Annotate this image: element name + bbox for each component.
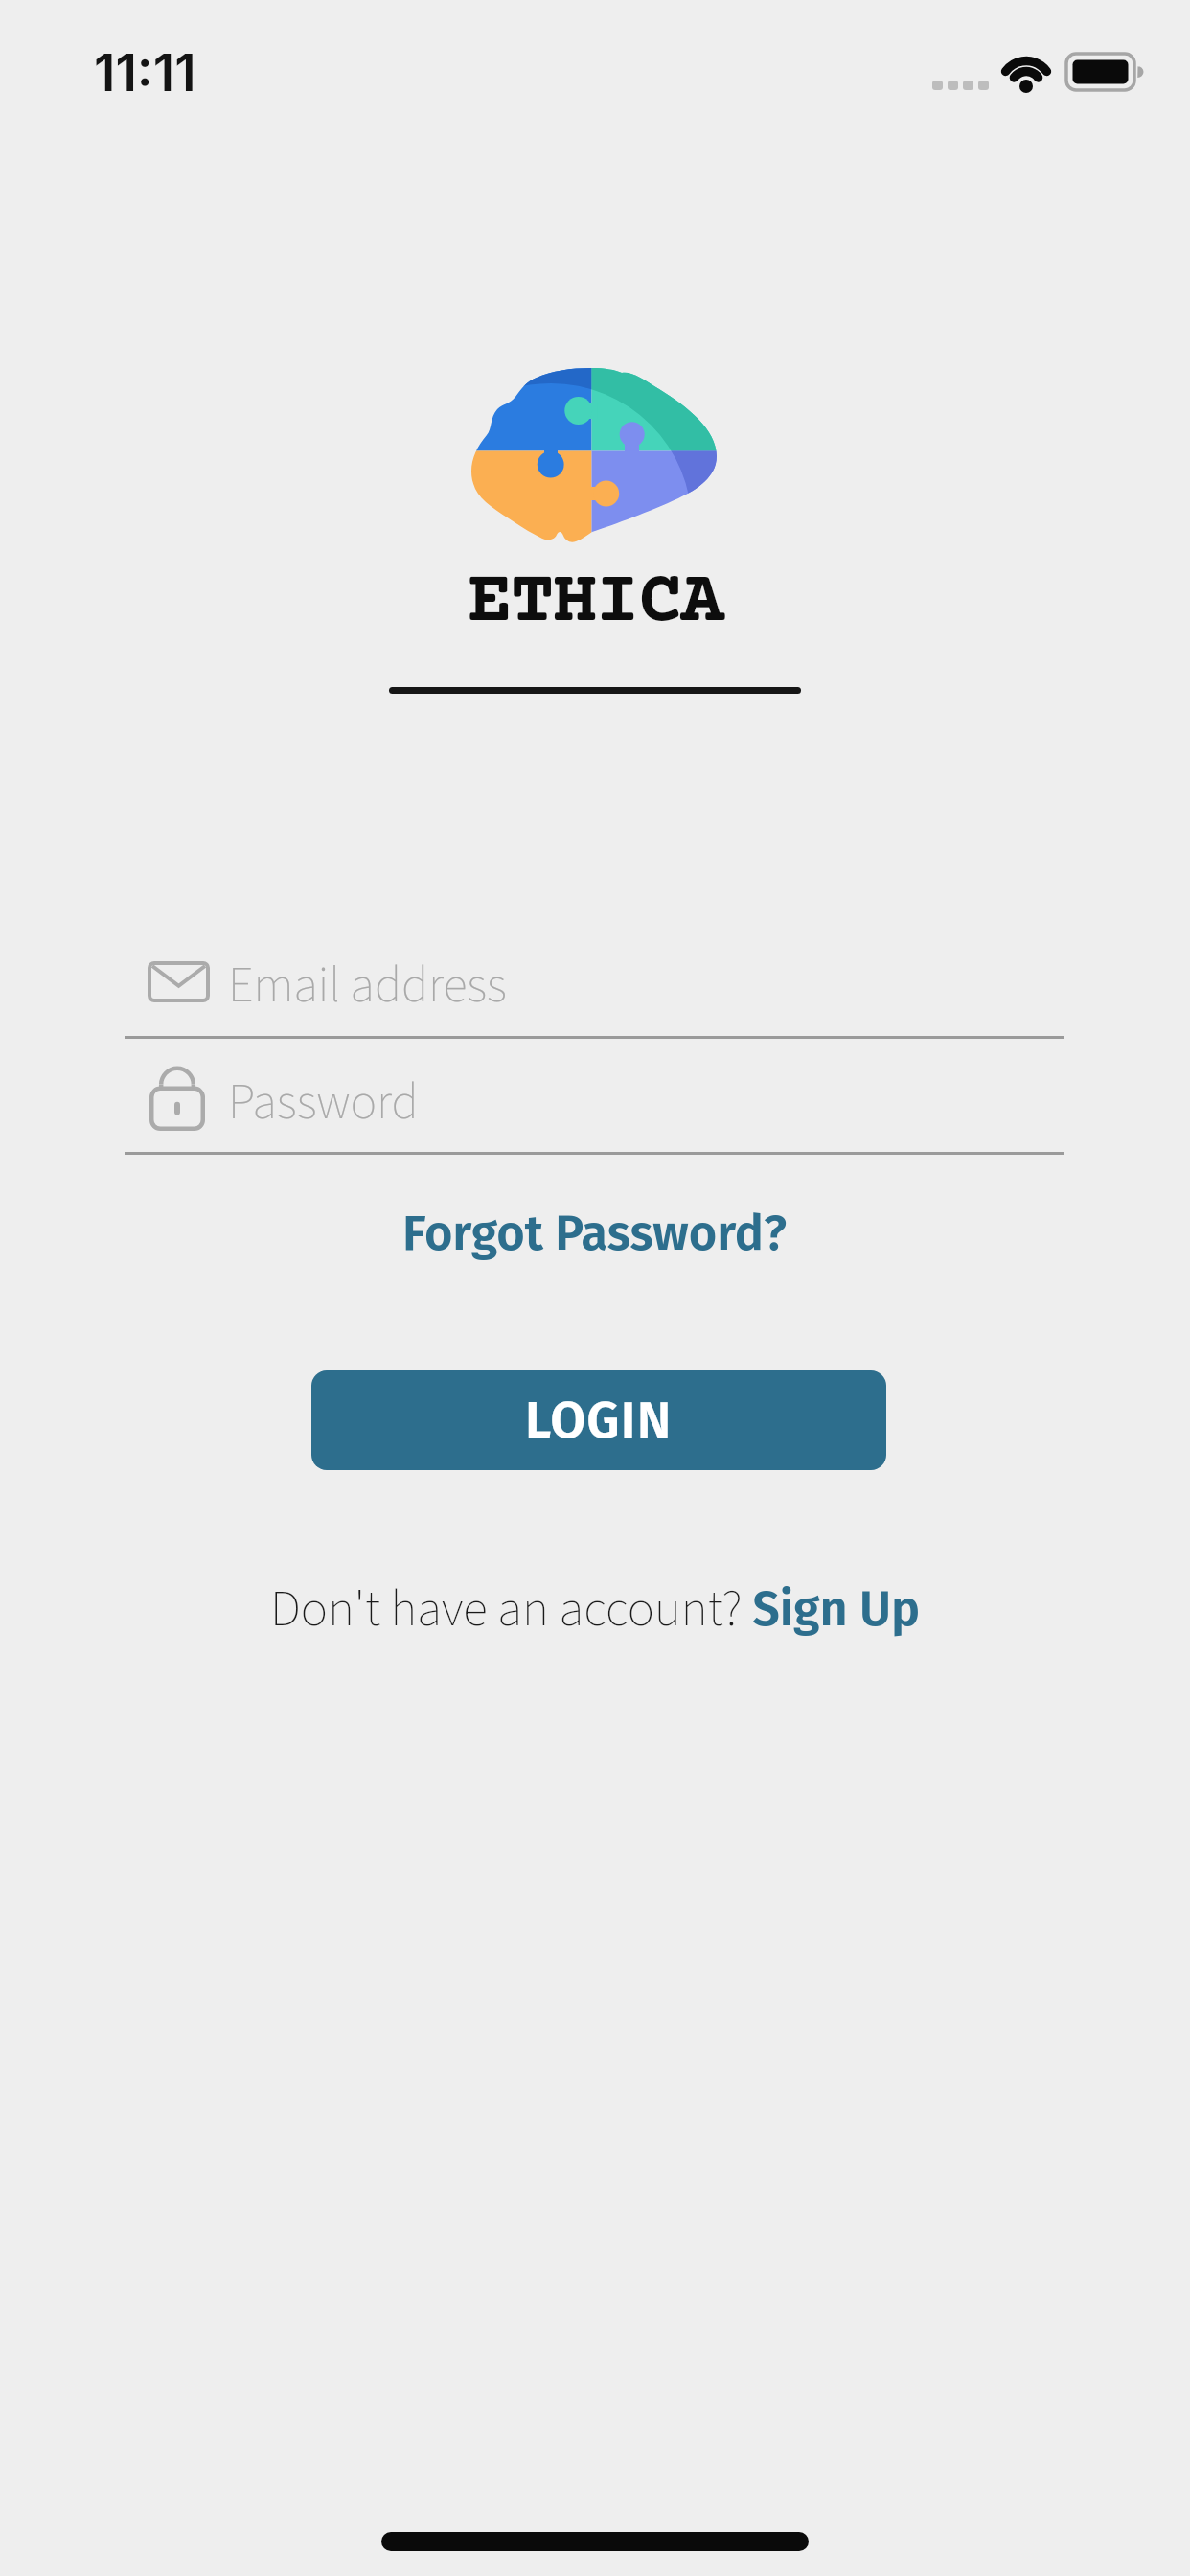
staticText: 11:11 [94, 42, 196, 103]
staticText: ETHICA [468, 563, 723, 645]
staticText: Forgot Password? [402, 1205, 788, 1263]
staticText: Email address [228, 951, 507, 1022]
button[interactable]: Don't have an account? Sign Up [270, 1574, 921, 1645]
button[interactable]: Forgot Password? [402, 1205, 788, 1263]
button[interactable]: Password [125, 1050, 1064, 1152]
staticText: Password [228, 1068, 419, 1138]
button[interactable]: LOGIN [311, 1370, 886, 1470]
staticText: LOGIN [525, 1390, 673, 1451]
button[interactable]: Email address [125, 934, 1064, 1036]
staticText: Don't have an account? Sign Up [270, 1574, 921, 1645]
